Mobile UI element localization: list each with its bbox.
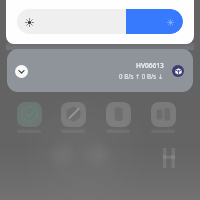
button[interactable]: Brightness bbox=[17, 9, 183, 34]
staticText: 0 B/s ↑ 0 B/s ↓ bbox=[119, 72, 164, 80]
button[interactable]: VPN bbox=[172, 65, 184, 77]
button[interactable]: App bbox=[17, 102, 42, 127]
button[interactable]: App bbox=[106, 102, 131, 127]
button[interactable]: App bbox=[61, 102, 86, 127]
button[interactable]: Expand bbox=[15, 65, 28, 78]
staticText: HV06613 bbox=[136, 61, 164, 70]
button[interactable]: Expand bbox=[7, 49, 193, 92]
button[interactable]: App bbox=[151, 102, 176, 127]
